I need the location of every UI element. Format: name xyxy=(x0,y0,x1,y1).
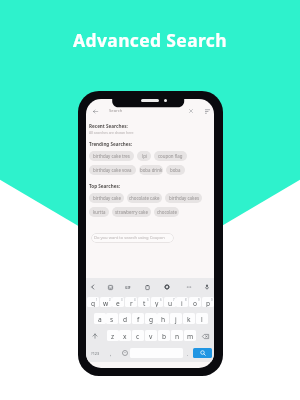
button[interactable]: Do you want to search using Coupon Code? xyxy=(91,233,174,243)
staticText: w xyxy=(103,299,109,307)
staticText: j xyxy=(175,315,177,324)
button[interactable]: GIF xyxy=(121,280,135,294)
staticText: s xyxy=(110,315,114,324)
button[interactable]: k xyxy=(183,313,195,324)
button[interactable]: t xyxy=(138,297,150,307)
staticText: i xyxy=(181,299,183,307)
button[interactable]: o xyxy=(189,297,201,307)
button[interactable]: birthday cake vova xyxy=(89,165,136,175)
staticText: 7 xyxy=(173,298,175,302)
button[interactable]: l xyxy=(196,313,208,324)
staticText: g xyxy=(149,315,154,324)
button[interactable]: Backspace xyxy=(199,330,211,342)
button[interactable]: chocolate cake xyxy=(127,193,162,203)
button[interactable]: z xyxy=(107,330,119,341)
staticText: a xyxy=(98,315,102,324)
staticText: q xyxy=(91,299,96,307)
staticText: c xyxy=(136,332,140,341)
staticText: ?123 xyxy=(91,351,100,356)
button[interactable]: u xyxy=(164,297,176,307)
staticText: Search xyxy=(109,108,123,114)
button[interactable]: More options xyxy=(182,280,196,294)
staticText: t xyxy=(143,299,146,307)
button[interactable]: coupon flag xyxy=(154,151,187,161)
button[interactable]: Emoji xyxy=(120,348,130,358)
staticText: l xyxy=(201,315,203,324)
button[interactable]: Filter xyxy=(201,105,213,117)
button[interactable]: d xyxy=(119,313,131,324)
staticText: birthday cake xyxy=(93,195,121,201)
staticText: 8 xyxy=(185,298,187,302)
button[interactable]: s xyxy=(106,313,118,324)
staticText: 0 xyxy=(211,298,213,302)
button[interactable]: j xyxy=(170,313,182,324)
button[interactable]: boba drink xyxy=(139,165,163,175)
button[interactable]: birthday cake xyxy=(89,193,124,203)
staticText: All searches are shown here xyxy=(89,130,134,135)
staticText: birthday cake vova xyxy=(93,167,132,173)
button[interactable]: c xyxy=(132,330,144,341)
button[interactable]: Previous xyxy=(86,280,100,294)
button[interactable]: i xyxy=(176,297,188,307)
staticText: o xyxy=(193,299,197,307)
staticText: strawberry cake xyxy=(115,209,148,215)
button[interactable]: n xyxy=(171,330,183,341)
staticText: m xyxy=(187,332,194,341)
staticText: z xyxy=(111,332,115,341)
button[interactable]: Stickers xyxy=(103,280,117,294)
button[interactable]: Comma xyxy=(106,348,115,358)
button[interactable]: b xyxy=(158,330,170,341)
button[interactable]: birthday cakes xyxy=(165,193,202,203)
button[interactable]: birthday cake tres xyxy=(89,151,134,161)
button[interactable]: e xyxy=(112,297,124,307)
button[interactable]: Shift xyxy=(89,330,101,342)
button[interactable]: Voice input xyxy=(200,280,214,294)
staticText: GIF xyxy=(125,285,131,290)
staticText: boba drink xyxy=(140,167,163,173)
button[interactable]: r xyxy=(125,297,137,307)
staticText: Advanced Search xyxy=(0,28,300,52)
button[interactable]: lpi xyxy=(137,151,151,161)
button[interactable]: ?123 xyxy=(88,348,102,358)
button[interactable]: Period xyxy=(184,348,192,358)
button[interactable]: strawberry cake xyxy=(112,207,151,217)
button[interactable]: h xyxy=(157,313,169,324)
button[interactable]: Search xyxy=(193,348,212,358)
button[interactable]: boba xyxy=(166,165,185,175)
button[interactable]: Clipboard xyxy=(140,280,154,294)
button[interactable]: a xyxy=(94,313,106,324)
button[interactable]: v xyxy=(145,330,157,341)
button[interactable]: Back xyxy=(89,105,101,117)
staticText: 9 xyxy=(198,298,200,302)
staticText: Recent Searches: xyxy=(89,123,128,129)
staticText: y xyxy=(155,299,159,307)
staticText: lpi xyxy=(142,153,147,159)
staticText: u xyxy=(168,299,173,307)
staticText: 5 xyxy=(147,298,149,302)
staticText: 4 xyxy=(134,298,136,302)
staticText: x xyxy=(123,332,127,341)
button[interactable]: y xyxy=(151,297,163,307)
button[interactable]: w xyxy=(100,297,112,307)
button[interactable]: x xyxy=(119,330,131,341)
button[interactable]: p xyxy=(202,297,214,307)
staticText: birthday cakes xyxy=(169,195,199,201)
staticText: e xyxy=(116,299,120,307)
button[interactable]: m xyxy=(184,330,196,341)
button[interactable]: Clear search xyxy=(185,105,197,117)
staticText: Top Searches: xyxy=(89,183,120,189)
staticText: v xyxy=(149,332,153,341)
staticText: 1 xyxy=(96,298,98,302)
staticText: chocolate xyxy=(157,209,177,215)
button[interactable]: f xyxy=(132,313,144,324)
staticText: 3 xyxy=(121,298,123,302)
staticText: k xyxy=(187,315,191,324)
button[interactable]: chocolate xyxy=(154,207,179,217)
staticText: Trending Searches: xyxy=(89,141,133,147)
button[interactable]: Settings xyxy=(160,280,174,294)
button[interactable]: q xyxy=(87,297,99,307)
button[interactable]: kurtta xyxy=(89,207,109,217)
button[interactable]: g xyxy=(145,313,157,324)
staticText: kurtta xyxy=(93,209,106,215)
